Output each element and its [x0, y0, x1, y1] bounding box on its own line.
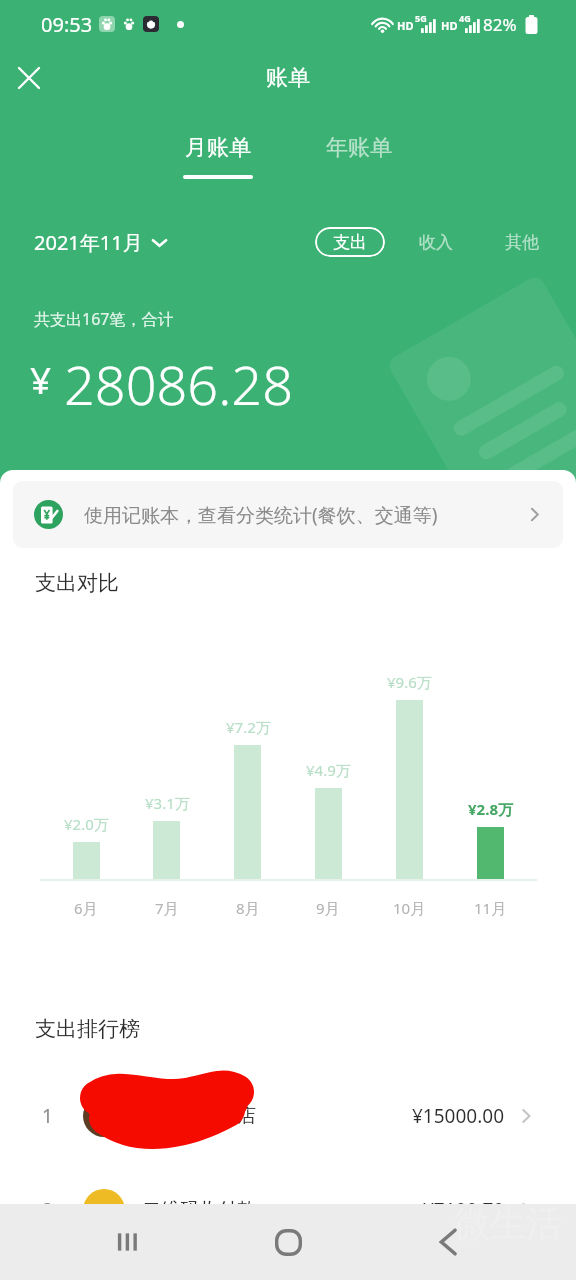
staticText: 收入: [419, 232, 453, 253]
staticText: 09:53: [41, 11, 93, 38]
staticText: 其他: [505, 232, 539, 253]
staticText: 共支出167笔，合计: [34, 308, 174, 330]
button[interactable]: 1: [0, 1073, 576, 1159]
button[interactable]: 年账单: [320, 134, 398, 162]
staticText: HD: [397, 18, 414, 33]
staticText: 二维码收付款: [142, 1198, 256, 1222]
staticText: ¥2.8万: [468, 799, 513, 819]
staticText: ¥2.0万: [64, 814, 109, 834]
button[interactable]: 月账单: [177, 134, 259, 179]
button[interactable]: 收入: [407, 227, 465, 257]
staticText: ¥4.9万: [306, 760, 351, 780]
staticText: 5G: [415, 12, 427, 24]
staticText: 11月: [474, 898, 507, 918]
staticText: 10月: [393, 898, 426, 918]
button[interactable]: Close: [6, 55, 52, 101]
staticText: 7月: [155, 898, 179, 918]
staticText: ¥9.6万: [387, 672, 432, 692]
button[interactable]: 其他: [493, 227, 551, 257]
staticText: ¥: [30, 354, 52, 404]
staticText: ¥3.1万: [145, 793, 190, 813]
button[interactable]: 使用记账本，查看分类统计(餐饮、交通等): [13, 481, 563, 548]
staticText: 2: [42, 1197, 53, 1223]
staticText: 使用记账本，查看分类统计(餐饮、交通等): [84, 502, 438, 528]
staticText: HD: [441, 18, 458, 33]
staticText: 某某百货商店: [142, 1104, 256, 1128]
staticText: 82%: [483, 13, 517, 36]
staticText: 支出: [333, 232, 367, 253]
staticText: 微生活: [454, 1201, 562, 1246]
staticText: 支出对比: [35, 570, 119, 596]
button[interactable]: 2021年11月: [34, 229, 167, 256]
staticText: 支出排行榜: [35, 1016, 140, 1042]
staticText: 8月: [236, 898, 260, 918]
staticText: 月账单: [185, 134, 251, 162]
staticText: 9月: [316, 898, 340, 918]
button[interactable]: Back: [412, 1206, 484, 1278]
button[interactable]: Recents: [92, 1206, 164, 1278]
staticText: ¥7100.70: [423, 1197, 505, 1223]
button[interactable]: 2: [0, 1167, 576, 1253]
staticText: 2021年11月: [34, 229, 143, 256]
staticText: ¥15000.00: [412, 1103, 505, 1129]
button[interactable]: Home: [252, 1206, 324, 1278]
staticText: 4G: [459, 12, 471, 24]
staticText: 1: [42, 1103, 53, 1129]
button[interactable]: 支出: [315, 227, 385, 257]
staticText: ¥7.2万: [226, 717, 271, 737]
staticText: 28086.28: [64, 347, 294, 421]
staticText: 6月: [74, 898, 98, 918]
staticText: 年账单: [326, 134, 392, 162]
staticText: 账单: [266, 64, 310, 92]
